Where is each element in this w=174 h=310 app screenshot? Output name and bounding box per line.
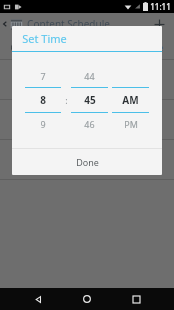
button[interactable]: 44 xyxy=(71,52,108,148)
staticText: 8 xyxy=(40,93,46,107)
staticText: 9 xyxy=(40,118,46,130)
button[interactable]: 7 xyxy=(25,52,61,148)
button[interactable]: Home xyxy=(76,288,98,310)
staticText: AM xyxy=(122,93,139,107)
button[interactable]: Back xyxy=(0,13,174,35)
staticText: Done xyxy=(76,156,99,168)
button[interactable]: Back xyxy=(27,288,49,310)
staticText: 44 xyxy=(84,70,95,82)
button[interactable]: 6:30 AM xyxy=(0,35,174,59)
staticText: 45 xyxy=(84,93,96,107)
staticText: Set Time xyxy=(22,31,67,46)
staticText: PM xyxy=(124,118,138,130)
staticText: 6:30 AM xyxy=(10,41,45,53)
staticText: 7 xyxy=(40,70,46,82)
staticText: 11:11 xyxy=(150,1,171,12)
button[interactable]: Recents xyxy=(125,288,147,310)
button[interactable]: Done xyxy=(12,149,162,175)
staticText: 46 xyxy=(84,118,95,130)
staticText: Remove xyxy=(129,41,164,53)
other: Back xyxy=(2,21,8,27)
button[interactable]: AM xyxy=(112,52,149,148)
button[interactable]: Add xyxy=(148,13,170,35)
staticText: Content Schedule xyxy=(27,17,110,31)
staticText: : xyxy=(65,94,68,106)
